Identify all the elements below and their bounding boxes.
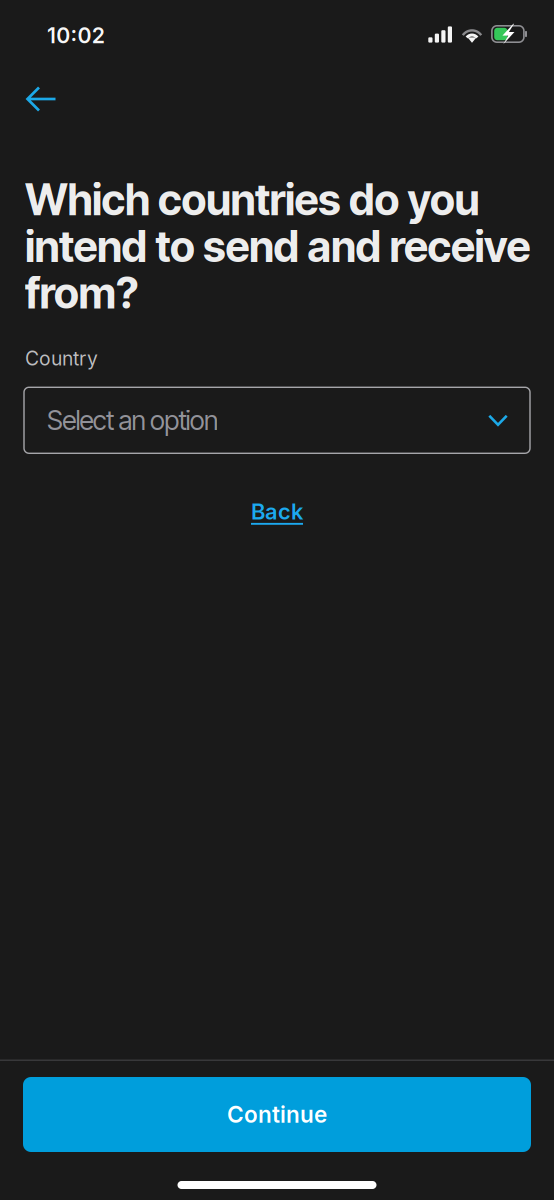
button[interactable]: Back: [14, 63, 69, 127]
button[interactable]: Select an option: [24, 387, 530, 453]
button[interactable]: Continue: [23, 1077, 531, 1152]
staticText: Which countries do you intend to send an…: [25, 174, 530, 319]
staticText: Back: [251, 498, 303, 525]
staticText: Continue: [227, 1101, 327, 1128]
staticText: Select an option: [47, 404, 218, 436]
button[interactable]: Back: [231, 487, 323, 536]
staticText: 10:02: [47, 23, 105, 48]
staticText: Country: [25, 347, 98, 370]
